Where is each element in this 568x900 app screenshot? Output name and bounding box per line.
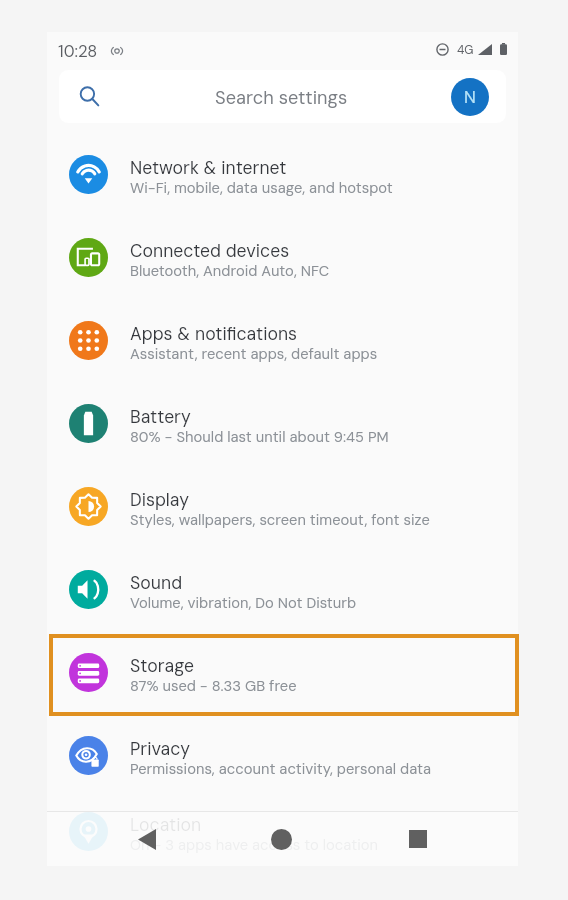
button[interactable]: Display: [47, 465, 518, 548]
button[interactable]: Account: [451, 78, 489, 116]
button[interactable]: Privacy: [47, 714, 518, 797]
staticText: Styles, wallpapers, screen timeout, font…: [130, 510, 430, 529]
button[interactable]: Battery: [47, 382, 518, 465]
staticText: Bluetooth, Android Auto, NFC: [130, 261, 330, 280]
staticText: Storage: [130, 655, 194, 678]
staticText: Apps & notifications: [130, 323, 298, 346]
staticText: Network & internet: [130, 157, 287, 180]
staticText: 87% used - 8.33 GB free: [130, 676, 297, 695]
button[interactable]: Search settings: [59, 70, 506, 123]
staticText: Privacy: [130, 738, 191, 761]
staticText: Permissions, account activity, personal …: [130, 759, 432, 778]
staticText: Sound: [130, 572, 183, 595]
button[interactable]: Storage: [47, 631, 518, 714]
staticText: Connected devices: [130, 240, 290, 263]
button[interactable]: Sound: [47, 548, 518, 631]
staticText: On - 3 apps have access to location: [130, 835, 378, 854]
staticText: Wi-Fi, mobile, data usage, and hotspot: [130, 178, 393, 197]
staticText: Battery: [130, 406, 191, 429]
staticText: Display: [130, 489, 190, 512]
button[interactable]: Network & internet: [47, 133, 518, 216]
staticText: 80% - Should last until about 9:45 PM: [130, 427, 389, 446]
staticText: N: [464, 86, 476, 108]
staticText: 4G: [457, 42, 474, 58]
staticText: Location: [130, 814, 202, 837]
staticText: Assistant, recent apps, default apps: [130, 344, 378, 363]
button[interactable]: Home: [264, 822, 298, 856]
staticText: 10:28: [58, 41, 98, 62]
button[interactable]: Back: [131, 823, 163, 855]
button[interactable]: Apps & notifications: [47, 299, 518, 382]
button[interactable]: Connected devices: [47, 216, 518, 299]
button[interactable]: Location: [47, 797, 518, 866]
staticText: Search settings: [215, 86, 348, 110]
staticText: Volume, vibration, Do Not Disturb: [130, 593, 357, 612]
button[interactable]: Recent apps: [403, 824, 433, 854]
